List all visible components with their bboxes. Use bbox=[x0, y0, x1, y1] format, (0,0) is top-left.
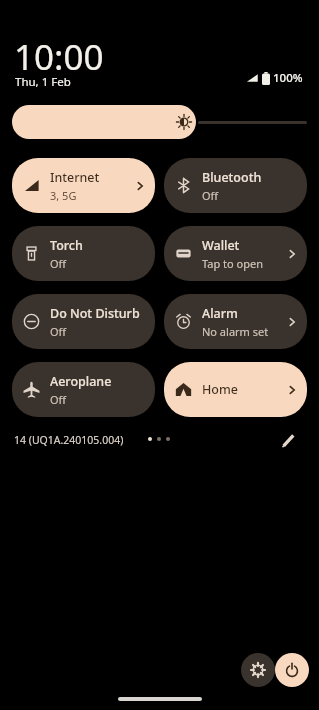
button[interactable]: Aeroplane mode bbox=[12, 362, 155, 417]
button[interactable]: Alarm bbox=[164, 294, 307, 349]
staticText: Do Not Disturb bbox=[50, 305, 140, 322]
staticText: Off bbox=[50, 392, 67, 407]
staticText: Off bbox=[50, 256, 67, 271]
staticText: Bluetooth bbox=[202, 169, 262, 186]
staticText: Torch bbox=[50, 237, 83, 254]
staticText: Aeroplane mode bbox=[50, 373, 146, 390]
staticText: 100% bbox=[273, 70, 303, 86]
staticText: 10:00 bbox=[14, 33, 104, 81]
button[interactable]: Brightness bbox=[12, 105, 307, 139]
staticText: Wallet bbox=[202, 237, 240, 254]
staticText: 3, 5G bbox=[50, 188, 77, 203]
staticText: Thu, 1 Feb bbox=[15, 74, 71, 90]
staticText: Off bbox=[202, 188, 219, 203]
button[interactable]: Do Not Disturb bbox=[12, 294, 155, 349]
button[interactable]: Power bbox=[275, 653, 309, 687]
button[interactable]: Bluetooth bbox=[164, 158, 307, 213]
button[interactable]: Edit tiles bbox=[276, 428, 300, 452]
button[interactable]: Home bbox=[164, 362, 307, 417]
staticText: Home bbox=[202, 381, 239, 398]
staticText: Alarm bbox=[202, 305, 238, 322]
staticText: Internet bbox=[50, 169, 100, 186]
staticText: Off bbox=[50, 324, 67, 339]
button[interactable]: Torch bbox=[12, 226, 155, 281]
button[interactable]: Settings bbox=[241, 653, 275, 687]
staticText: Tap to open bbox=[202, 256, 263, 271]
button[interactable]: Wallet bbox=[164, 226, 307, 281]
staticText: No alarm set bbox=[202, 324, 269, 339]
button[interactable]: Internet bbox=[12, 158, 155, 213]
staticText: 14 (UQ1A.240105.004) bbox=[14, 433, 124, 447]
